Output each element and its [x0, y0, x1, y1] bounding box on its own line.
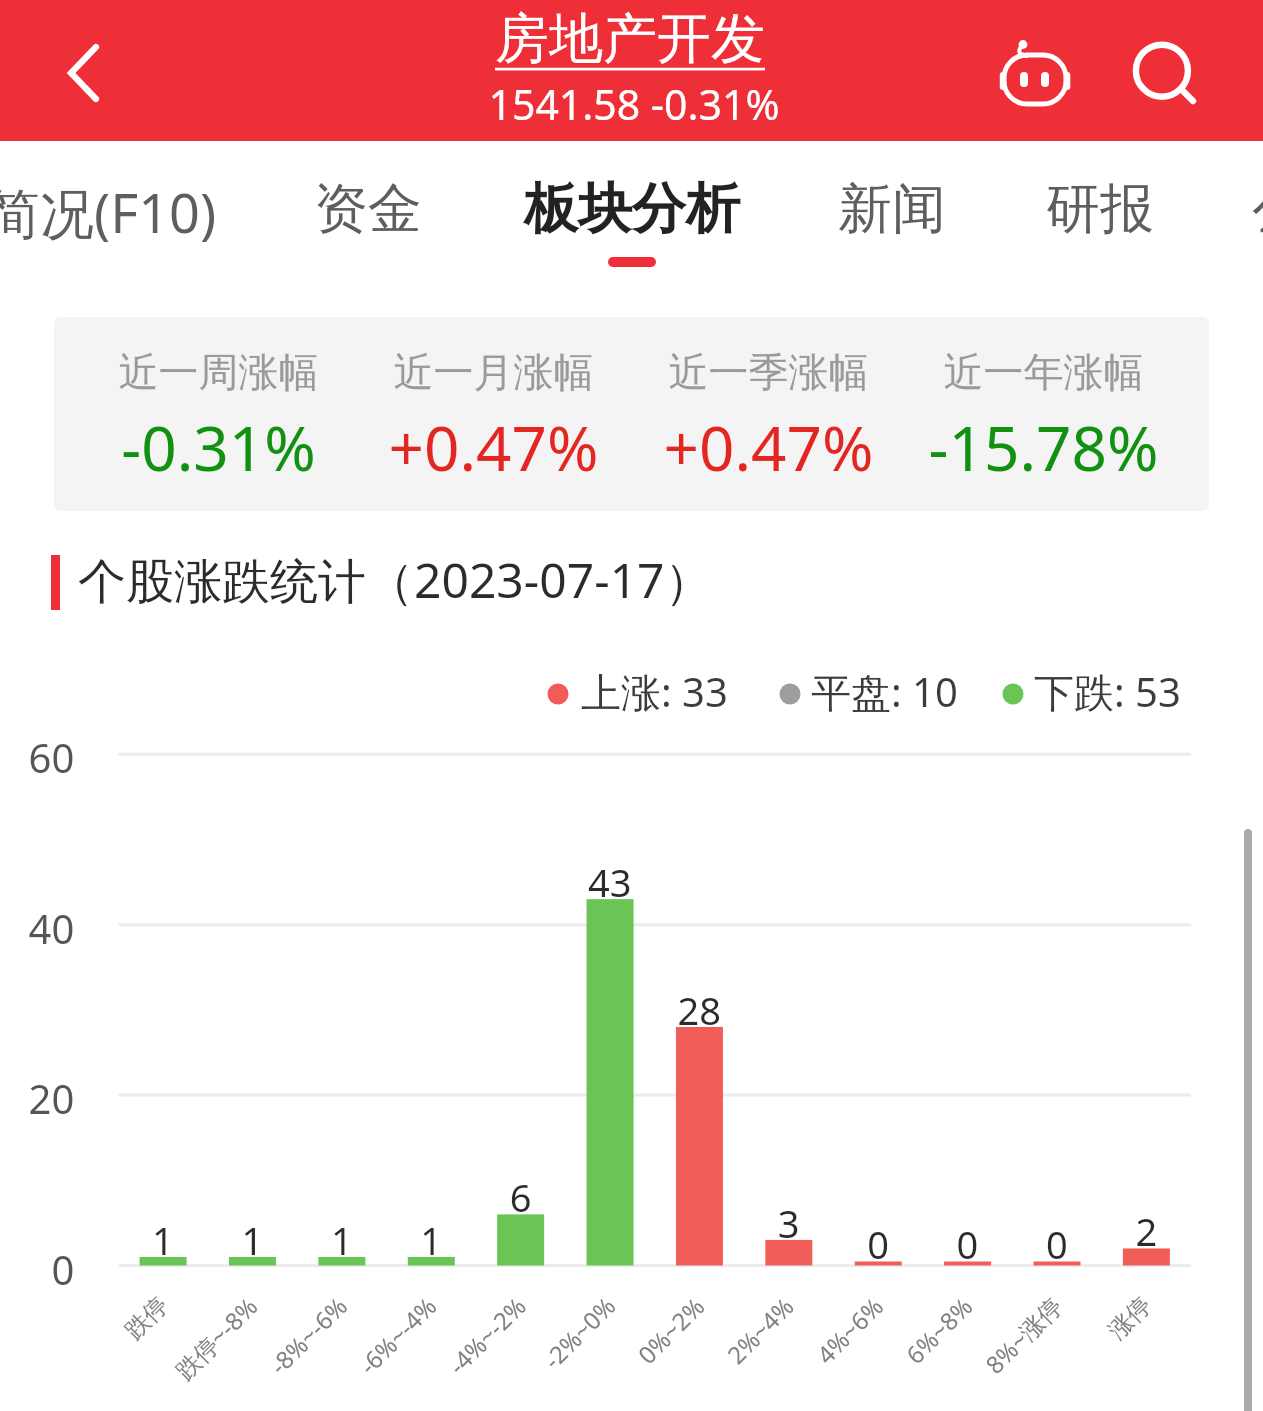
button[interactable]: Back	[20, 20, 120, 124]
button[interactable]: 资金	[314, 160, 422, 250]
staticText: +0.47%	[630, 405, 907, 489]
staticText: 近一年涨幅	[905, 347, 1182, 397]
button[interactable]: 板块分析	[524, 160, 740, 250]
staticText: 下跌: 53	[1034, 664, 1181, 719]
staticText: 板块分析	[524, 175, 740, 243]
staticText: 房地产开发	[330, 5, 930, 73]
staticText: 近一周涨幅	[80, 347, 357, 397]
button[interactable]: 研报	[1046, 160, 1154, 250]
staticText: 研报	[1046, 175, 1154, 243]
staticText: 新闻	[838, 175, 946, 243]
button[interactable]: 新闻	[838, 160, 946, 250]
staticText: -0.31%	[80, 405, 357, 489]
staticText: -15.78%	[905, 405, 1182, 489]
staticText: +0.47%	[355, 405, 632, 489]
staticText: 公告	[1252, 175, 1263, 243]
staticText: 上涨: 33	[581, 664, 728, 719]
staticText: 资金	[314, 175, 422, 243]
staticText: 近一季涨幅	[630, 347, 907, 397]
button[interactable]: 简况(F10)	[0, 160, 217, 250]
button[interactable]: AI assistant	[995, 30, 1080, 115]
staticText: 个股涨跌统计（2023-07-17）	[78, 547, 713, 613]
staticText: 1541.58 -0.31%	[334, 76, 934, 132]
staticText: 平盘: 10	[811, 664, 958, 719]
staticText: 近一月涨幅	[355, 347, 632, 397]
button[interactable]: Search	[1122, 30, 1206, 114]
staticText: 简况(F10)	[0, 175, 217, 249]
button[interactable]: 公告	[1252, 160, 1263, 250]
